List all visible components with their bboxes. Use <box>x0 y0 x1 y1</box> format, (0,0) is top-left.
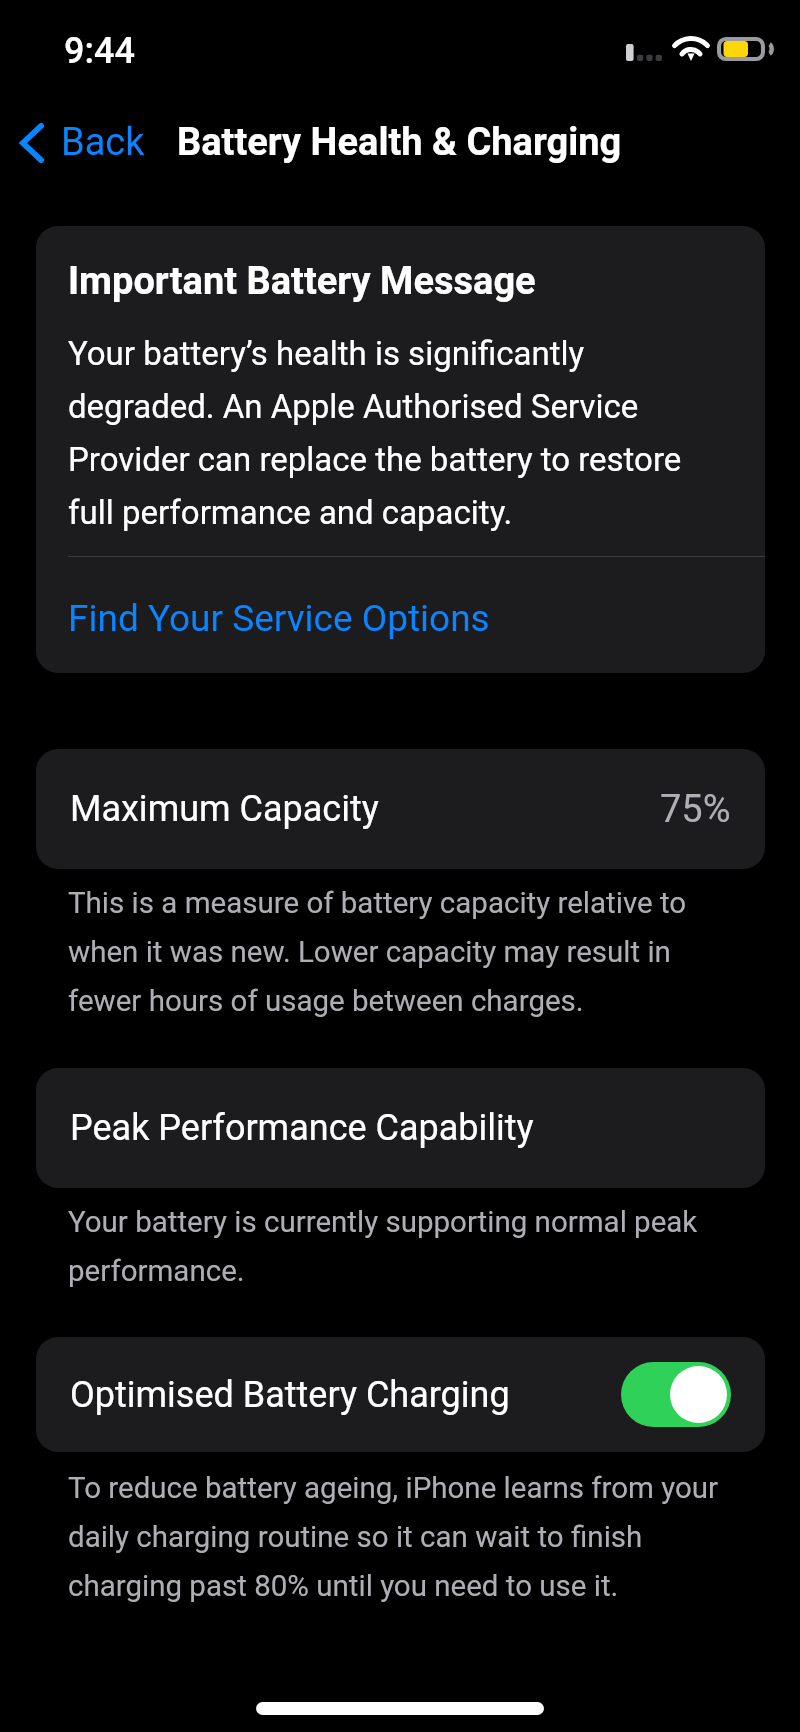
button[interactable]: Maximum Capacity <box>36 749 765 869</box>
button[interactable]: Back <box>0 112 159 173</box>
staticText: Important Battery Message <box>68 259 536 303</box>
button[interactable]: Find Your Service Options <box>36 557 765 673</box>
other: Wi-Fi <box>674 36 708 61</box>
staticText: Maximum Capacity <box>70 788 379 830</box>
button[interactable]: Optimised Battery Charging <box>36 1337 765 1452</box>
button[interactable]: Optimised Battery Charging, on <box>621 1362 731 1427</box>
staticText: Find Your Service Options <box>68 597 490 640</box>
other: Battery, low power mode <box>717 37 770 61</box>
staticText: Your battery is currently supporting nor… <box>68 1194 733 1292</box>
staticText: Optimised Battery Charging <box>70 1374 510 1416</box>
staticText: 75% <box>660 787 731 832</box>
staticText: Back <box>61 120 145 165</box>
staticText: Your battery’s health is significantly d… <box>68 323 733 535</box>
staticText: 9:44 <box>64 30 135 72</box>
staticText: To reduce battery ageing, iPhone learns … <box>68 1460 733 1607</box>
other: Cellular signal <box>626 44 664 61</box>
button[interactable]: Peak Performance Capability <box>36 1068 765 1188</box>
staticText: Peak Performance Capability <box>70 1107 534 1149</box>
staticText: Battery Health & Charging <box>177 120 622 165</box>
staticText: This is a measure of battery capacity re… <box>68 875 733 1022</box>
